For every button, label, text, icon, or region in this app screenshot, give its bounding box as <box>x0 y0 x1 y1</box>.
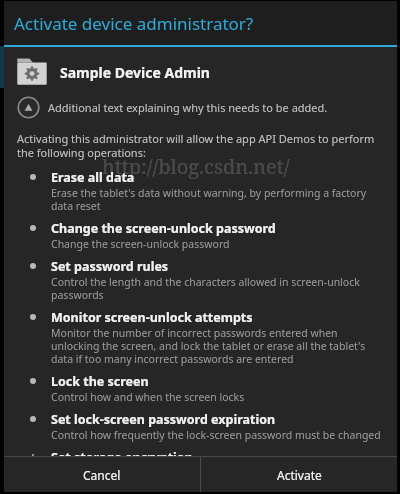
staticText: Activate <box>277 467 322 483</box>
staticText: Set lock-screen password expiration <box>51 411 276 428</box>
staticText: Change the screen-unlock password <box>51 237 230 251</box>
button[interactable]: Activate <box>201 457 397 492</box>
staticText: Monitor the number of incorrect password… <box>51 326 385 366</box>
other: Collapse additional text <box>17 96 40 119</box>
staticText: Control how frequently the lock-screen p… <box>51 428 381 442</box>
staticText: Set password rules <box>51 258 169 275</box>
staticText: Additional text explaining why this need… <box>48 100 328 115</box>
staticText: Control the length and the characters al… <box>51 275 385 302</box>
button[interactable]: Collapse additional text <box>4 94 397 121</box>
button[interactable]: Set password rules <box>4 258 397 302</box>
button[interactable]: Erase all data <box>4 169 397 213</box>
staticText: Erase the tablet's data without warning,… <box>51 186 385 213</box>
staticText: Lock the screen <box>51 373 149 390</box>
staticText: Sample Device Admin <box>60 63 210 82</box>
button[interactable]: Lock the screen <box>4 373 397 404</box>
button[interactable]: Set lock-screen password expiration <box>4 411 397 442</box>
staticText: Change the screen-unlock password <box>51 220 276 237</box>
staticText: Cancel <box>83 467 121 483</box>
staticText: Activating this administrator will allow… <box>17 131 383 160</box>
button[interactable]: Cancel <box>4 457 200 492</box>
staticText: Set storage encryption <box>51 449 193 456</box>
button[interactable]: Change the screen-unlock password <box>4 220 397 251</box>
staticText: Activate device administrator? <box>14 12 254 35</box>
staticText: Erase all data <box>51 169 135 186</box>
staticText: Control how and when the screen locks <box>51 390 245 404</box>
button[interactable]: Monitor screen-unlock attempts <box>4 309 397 366</box>
button[interactable]: Set storage encryption <box>4 449 397 456</box>
staticText: http://blog.csdn.net/ <box>102 153 290 180</box>
staticText: Monitor screen-unlock attempts <box>51 309 253 326</box>
